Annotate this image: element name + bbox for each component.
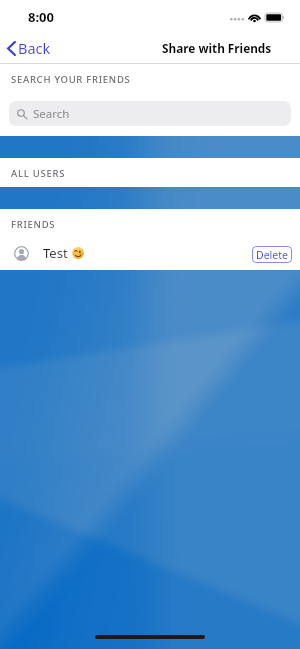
staticText: 8:00	[28, 8, 54, 26]
button[interactable]: Search	[9, 101, 291, 126]
staticText: FRIENDS	[11, 218, 56, 231]
staticText: Delete	[256, 248, 288, 262]
staticText: Test	[43, 244, 68, 262]
staticText: Share with Friends	[162, 40, 272, 56]
button[interactable]: Delete	[252, 246, 292, 263]
button[interactable]: Test	[0, 239, 300, 267]
staticText: SEARCH YOUR FRIENDS	[11, 73, 131, 86]
staticText: Search	[33, 106, 70, 122]
button[interactable]: Back	[0, 34, 59, 62]
staticText: Back	[18, 38, 51, 58]
staticText: ALL USERS	[11, 167, 66, 180]
